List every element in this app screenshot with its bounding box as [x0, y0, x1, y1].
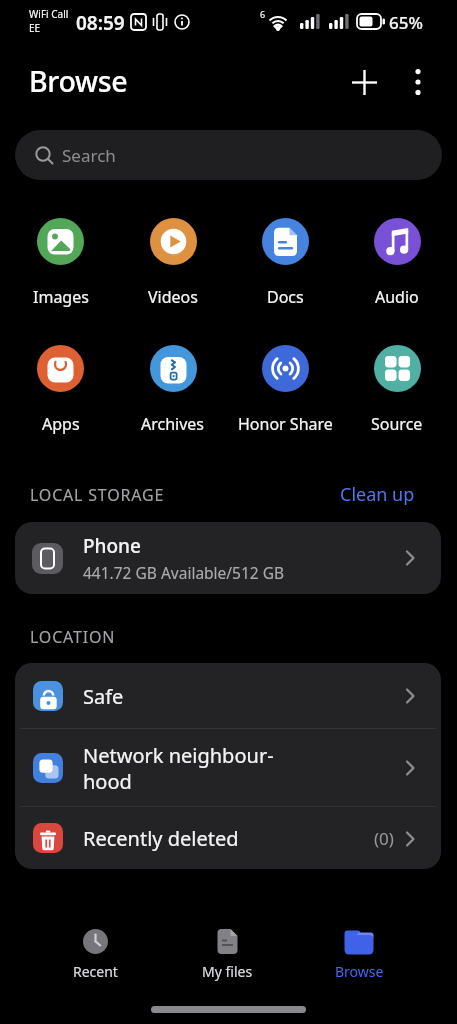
button[interactable]: Images — [4, 218, 117, 308]
staticText: LOCAL STORAGE — [30, 484, 165, 506]
button[interactable]: Recent — [55, 928, 135, 1000]
button[interactable]: Videos — [117, 218, 229, 308]
staticText: Source — [371, 413, 423, 435]
staticText: 6 — [260, 8, 266, 20]
button[interactable] — [400, 64, 436, 100]
staticText: Recent — [73, 962, 118, 981]
staticText: 65% — [389, 11, 423, 34]
button[interactable]: Archives — [117, 345, 229, 435]
button[interactable]: Network neighbour- hood — [15, 729, 441, 807]
button[interactable]: Honor Share — [229, 345, 341, 435]
staticText: Images — [33, 286, 89, 308]
staticText: 441.72 GB Available/512 GB — [83, 562, 285, 583]
button[interactable]: Browse — [319, 928, 399, 1000]
staticText: Phone — [83, 533, 141, 559]
staticText: 08:59 — [76, 10, 125, 36]
staticText: Audio — [375, 286, 419, 308]
staticText: Recently deleted — [83, 825, 239, 852]
staticText: (0) — [374, 827, 394, 850]
button[interactable]: Clean up — [330, 480, 425, 509]
button[interactable]: Recently deleted — [15, 807, 441, 869]
staticText: Honor Share — [238, 413, 333, 435]
staticText: My files — [202, 962, 253, 981]
button[interactable]: Apps — [4, 345, 117, 435]
button[interactable]: Safe — [15, 663, 441, 729]
button[interactable]: Source — [341, 345, 453, 435]
staticText: Search — [62, 144, 116, 167]
button[interactable]: Audio — [341, 218, 453, 308]
button[interactable]: Search — [15, 130, 442, 180]
staticText: Apps — [42, 413, 80, 435]
button[interactable]: Phone — [15, 522, 441, 594]
staticText: Browse — [29, 62, 128, 101]
staticText: Network neighbour- hood — [83, 742, 274, 794]
staticText: WiFi Call — [29, 7, 69, 21]
staticText: EE — [29, 21, 41, 35]
button[interactable]: Docs — [229, 218, 341, 308]
staticText: Archives — [141, 413, 205, 435]
staticText: Videos — [148, 286, 198, 308]
staticText: Browse — [335, 962, 384, 981]
staticText: Docs — [267, 286, 304, 308]
button[interactable] — [346, 64, 382, 100]
staticText: LOCATION — [30, 626, 116, 648]
staticText: Clean up — [340, 482, 415, 507]
button[interactable]: My files — [187, 928, 267, 1000]
staticText: Safe — [83, 683, 124, 710]
